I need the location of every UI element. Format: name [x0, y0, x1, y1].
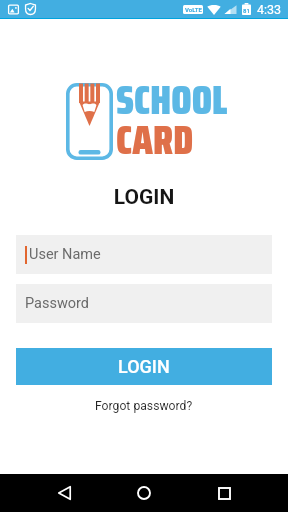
- staticText: Password: [25, 295, 90, 312]
- staticText: 4:33: [257, 2, 282, 17]
- staticText: SCHOOL: [116, 69, 228, 132]
- staticText: CARD: [116, 109, 194, 172]
- staticText: LOGIN: [0, 185, 288, 210]
- staticText: VoLTE: [185, 6, 202, 13]
- button[interactable]: LOGIN: [16, 348, 272, 385]
- staticText: User Name: [29, 246, 101, 263]
- staticText: LOGIN: [118, 356, 170, 377]
- button[interactable]: Home: [120, 474, 168, 512]
- button[interactable]: Password: [16, 284, 272, 323]
- button[interactable]: Back: [40, 474, 88, 512]
- button[interactable]: Forgot password?: [89, 396, 199, 416]
- button[interactable]: User Name: [16, 235, 272, 274]
- button[interactable]: Recents: [200, 474, 248, 512]
- staticText: 81: [243, 7, 250, 14]
